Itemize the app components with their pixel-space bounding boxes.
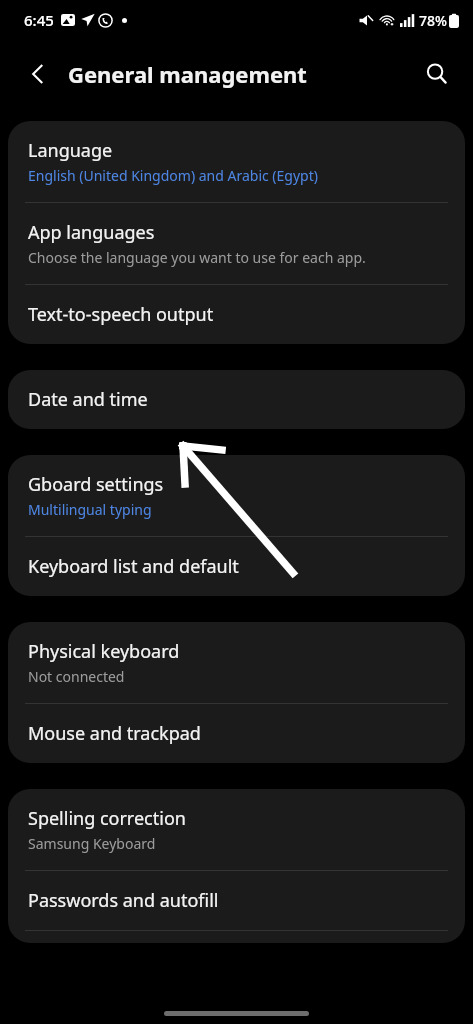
staticText: Physical keyboard [28, 639, 180, 664]
button[interactable]: Spelling correction [8, 789, 465, 870]
staticText: General management [68, 59, 307, 89]
button[interactable]: Keyboard list and default [8, 537, 465, 596]
staticText: App languages [28, 220, 155, 245]
staticText: Language [28, 138, 113, 163]
button[interactable]: Mouse and trackpad [8, 704, 465, 763]
button[interactable]: Gboard settings [8, 455, 465, 536]
staticText: Multilingual typing [28, 500, 152, 519]
button[interactable]: Language [8, 121, 465, 202]
staticText: Spelling correction [28, 806, 186, 831]
staticText: Choose the language you want to use for … [28, 248, 366, 267]
staticText: Gboard settings [28, 472, 164, 497]
staticText: English (United Kingdom) and Arabic (Egy… [28, 166, 318, 185]
staticText: Passwords and autofill [28, 888, 219, 913]
staticText: 6:45 [24, 10, 54, 30]
staticText: 78% [419, 11, 447, 30]
button[interactable]: App languages [8, 203, 465, 284]
button[interactable]: Search [413, 50, 461, 98]
staticText: Samsung Keyboard [28, 834, 156, 853]
staticText: Keyboard list and default [28, 554, 239, 579]
button[interactable]: Back [14, 50, 62, 98]
staticText: Date and time [28, 387, 148, 412]
button[interactable]: Passwords and autofill [8, 871, 465, 930]
staticText: Mouse and trackpad [28, 721, 201, 746]
staticText: Not connected [28, 667, 125, 686]
button[interactable]: Text-to-speech output [8, 285, 465, 344]
staticText: Text-to-speech output [28, 302, 214, 327]
button[interactable]: Physical keyboard [8, 622, 465, 703]
button[interactable]: Date and time [8, 370, 465, 429]
